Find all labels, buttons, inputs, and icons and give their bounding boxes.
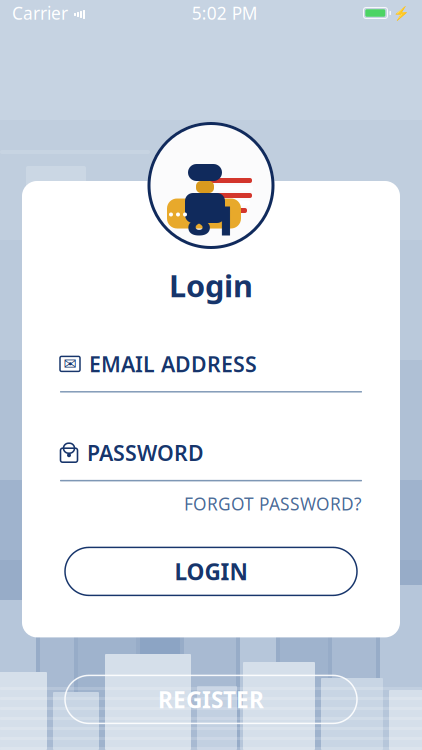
button[interactable]: FORGOT PASSWORD? [184, 492, 362, 515]
staticText: Carrier [12, 1, 68, 24]
staticText: 81 [187, 192, 235, 247]
staticText: Login [169, 265, 253, 306]
button[interactable]: LOGIN [65, 547, 357, 595]
staticText: FORGOT PASSWORD? [184, 492, 362, 515]
staticText: 5:02 PM [192, 1, 258, 24]
staticText: ⚡ [393, 5, 410, 21]
staticText: PASSWORD [87, 439, 204, 467]
staticText: LOGIN [174, 556, 247, 586]
button[interactable]: REGISTER [65, 675, 357, 723]
staticText: EMAIL ADDRESS [89, 350, 257, 378]
staticText: ✉ [63, 355, 76, 373]
staticText: REGISTER [158, 684, 264, 714]
